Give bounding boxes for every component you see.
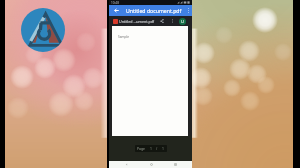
staticText: U xyxy=(181,19,185,25)
button[interactable]: Recents xyxy=(168,161,182,168)
staticText: 10:48 xyxy=(111,1,119,5)
button[interactable]: Channel avatar xyxy=(21,8,65,52)
button[interactable]: Home xyxy=(144,161,158,168)
button[interactable]: More xyxy=(168,17,176,25)
staticText: Untitled ...ument.pdf xyxy=(119,19,155,24)
button[interactable]: Share xyxy=(158,17,166,25)
button[interactable]: Back xyxy=(111,5,121,16)
staticText: / xyxy=(156,146,158,151)
button[interactable]: Back xyxy=(119,161,133,168)
button[interactable]: Account xyxy=(179,18,186,25)
staticText: 1 xyxy=(162,146,164,151)
staticText: Untitled document.pdf xyxy=(126,7,182,14)
staticText: Page xyxy=(137,146,145,151)
button[interactable]: More options xyxy=(184,5,192,16)
staticText: 1 xyxy=(150,146,152,151)
staticText: Sample xyxy=(118,35,130,39)
